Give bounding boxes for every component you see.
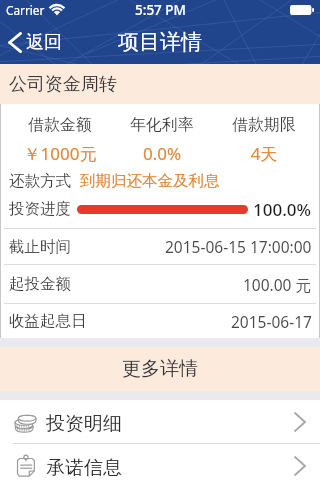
staticText: ￥1000元 — [9, 142, 111, 165]
staticText: 2015-06-17 — [231, 311, 312, 332]
staticText: 更多详情 — [122, 357, 198, 381]
staticText: 承诺信息 — [46, 456, 122, 480]
staticText: 投资明细 — [46, 412, 122, 436]
staticText: 借款金额 — [9, 115, 111, 135]
staticText: 还款方式 — [9, 171, 71, 191]
staticText: 借款期限 — [213, 115, 315, 135]
staticText: Carrier — [6, 2, 45, 18]
staticText: 起投金额 — [9, 274, 71, 294]
button[interactable]: 返回 — [0, 23, 72, 62]
staticText: 返回 — [26, 31, 62, 54]
staticText: 100.0% — [253, 198, 312, 221]
staticText: 2015-06-15 17:00:00 — [165, 236, 312, 257]
button[interactable]: 承诺信息 — [0, 444, 320, 480]
staticText: 年化利率 — [111, 115, 213, 135]
staticText: 100.00 元 — [243, 274, 312, 295]
staticText: 0.0% — [111, 142, 213, 165]
staticText: 公司资金周转 — [9, 73, 117, 96]
staticText: 5:57 PM — [135, 1, 186, 19]
button[interactable]: 投资明细 — [0, 400, 320, 443]
staticText: 4天 — [213, 142, 315, 165]
staticText: 到期归还本金及利息 — [80, 171, 220, 191]
staticText: 投资进度 — [9, 199, 71, 219]
staticText: 截止时间 — [9, 237, 71, 257]
staticText: 收益起息日 — [9, 311, 87, 331]
staticText: 项目详情 — [118, 29, 202, 55]
